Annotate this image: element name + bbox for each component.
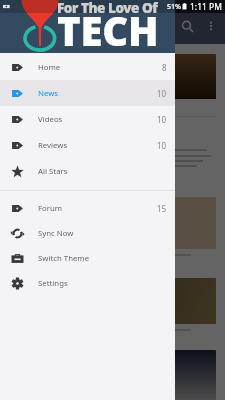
button[interactable]: Reviews xyxy=(0,132,175,158)
button[interactable]: Search xyxy=(174,13,200,39)
staticText: 51% xyxy=(167,2,181,12)
button[interactable]: Settings xyxy=(0,271,175,296)
button[interactable]: Forum xyxy=(0,196,175,221)
staticText: 10 xyxy=(157,114,167,125)
staticText: 8 xyxy=(162,62,167,73)
button[interactable]: Videos xyxy=(0,106,175,132)
button[interactable] xyxy=(9,278,216,342)
staticText: 10 xyxy=(157,88,167,99)
staticText: For The Love Of xyxy=(57,0,158,17)
staticText: 15 xyxy=(157,203,167,214)
button[interactable]: All Stars xyxy=(0,158,175,184)
button[interactable]: More options xyxy=(200,15,222,37)
button[interactable] xyxy=(9,197,216,275)
staticText: TECH xyxy=(57,3,159,56)
staticText: Reviews xyxy=(38,140,68,151)
staticText: Sync Now xyxy=(38,228,74,239)
button[interactable]: Switch Theme xyxy=(0,246,175,271)
staticText: Switch Theme xyxy=(38,253,90,264)
staticText: Home xyxy=(38,62,61,73)
staticText: Videos xyxy=(38,114,63,125)
button[interactable] xyxy=(9,350,216,400)
staticText: 10 xyxy=(157,140,167,151)
button[interactable] xyxy=(9,54,216,188)
button[interactable]: Sync Now xyxy=(0,221,175,246)
staticText: 1:11 PM xyxy=(190,1,222,13)
staticText: All Stars xyxy=(38,166,68,177)
button[interactable]: News xyxy=(0,80,175,106)
staticText: Forum xyxy=(38,203,63,214)
staticText: News xyxy=(38,88,59,99)
staticText: Settings xyxy=(38,278,68,289)
button[interactable]: Home xyxy=(0,54,175,80)
